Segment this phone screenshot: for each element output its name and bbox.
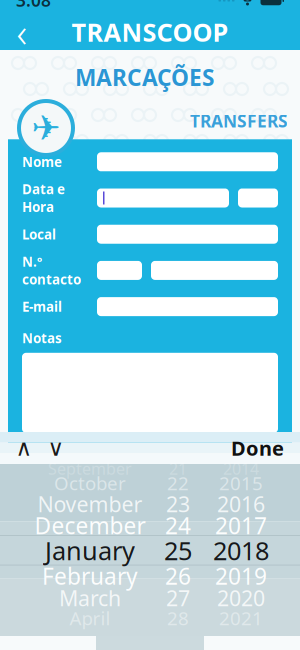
button[interactable] xyxy=(97,225,278,244)
staticText: 23 xyxy=(166,490,190,518)
staticText: Data e Hora xyxy=(22,180,65,216)
staticText: 24 xyxy=(165,510,191,540)
button[interactable] xyxy=(97,188,229,207)
staticText: E-mail xyxy=(22,298,62,315)
staticText: MARCAÇÕES xyxy=(75,62,214,92)
button[interactable] xyxy=(151,261,278,280)
staticText: ∨ xyxy=(47,435,64,461)
staticText: 2020 xyxy=(217,584,265,612)
staticText: Done xyxy=(231,435,284,461)
staticText: ∧ xyxy=(15,435,32,461)
staticText: January xyxy=(45,534,135,567)
button[interactable] xyxy=(97,297,278,316)
staticText: ‹ xyxy=(16,5,27,58)
button[interactable]: Done xyxy=(223,430,292,466)
button[interactable]: Next field xyxy=(40,433,72,463)
staticText: 26 xyxy=(165,561,191,591)
staticText: 22 xyxy=(167,471,189,495)
staticText: 28 xyxy=(167,606,189,630)
staticText: February xyxy=(42,561,138,591)
staticText: 2019 xyxy=(215,561,267,591)
staticText: 2018 xyxy=(213,534,269,567)
staticText: 2016 xyxy=(217,490,265,518)
button[interactable]: TRANSFERS xyxy=(186,106,292,135)
staticText: 2021 xyxy=(219,606,263,630)
staticText: ✈ xyxy=(31,108,60,148)
button[interactable] xyxy=(97,261,142,280)
staticText: Local xyxy=(22,225,56,243)
staticText: TRANSFERS xyxy=(190,109,288,132)
staticText: Nome xyxy=(22,153,62,171)
staticText: October xyxy=(54,471,126,495)
staticText: N.º contacto xyxy=(22,253,81,288)
staticText: November xyxy=(37,490,142,518)
staticText: 2015 xyxy=(219,471,263,495)
staticText: TRANSCOOP xyxy=(71,15,228,49)
button[interactable]: Back xyxy=(0,14,44,50)
button[interactable] xyxy=(238,188,278,207)
staticText: 2017 xyxy=(215,510,267,540)
staticText: 3:08 xyxy=(16,0,51,11)
staticText: 21 xyxy=(169,458,187,479)
staticText: 2014 xyxy=(223,458,259,479)
staticText: September xyxy=(48,458,132,479)
staticText: Notas xyxy=(22,329,62,347)
button[interactable]: Previous field xyxy=(8,433,40,463)
button[interactable] xyxy=(97,152,278,171)
staticText: December xyxy=(34,510,145,540)
staticText: March xyxy=(59,584,121,612)
staticText: 27 xyxy=(166,584,190,612)
button[interactable] xyxy=(8,353,292,433)
staticText: 25 xyxy=(164,534,192,567)
staticText: April xyxy=(69,606,110,630)
